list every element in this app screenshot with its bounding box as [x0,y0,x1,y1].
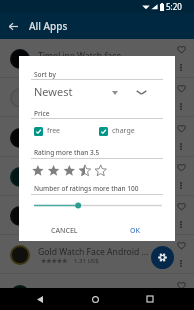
button[interactable]: More options [172,58,190,76]
staticText: All Apps [29,19,68,33]
button[interactable]: Expand sort options [130,81,152,103]
staticText: free [47,126,61,136]
button[interactable]: Favourite [172,119,190,137]
button[interactable]: Home [84,288,106,310]
staticText: Modern Watch Face [38,207,118,219]
button[interactable]: Favourite [172,276,190,294]
button[interactable]: TimeLine Watch face [0,39,194,78]
button[interactable]: Recents [139,288,161,310]
button[interactable]: Simple Watch Face [0,118,194,157]
button[interactable]: Number of ratings [34,198,162,212]
button[interactable]: Elegant Watch Face [0,275,194,310]
button[interactable]: Classic Watch Face [0,157,194,196]
button[interactable]: Settings [151,246,174,269]
staticText: Elegant Watch Face [38,286,117,298]
staticText: Rating more than 3.5 [34,148,100,157]
staticText: Newest [34,84,73,99]
staticText: OK [130,226,140,236]
button[interactable]: More options [172,97,190,115]
staticText: Analog Watch Face [38,89,115,101]
button[interactable]: Favourite [172,158,190,176]
staticText: Gold Watch Face Android Wear [38,246,151,258]
button[interactable]: Favourite [172,197,190,215]
button[interactable]: More options [172,254,190,272]
button[interactable]: Gold Watch Face Android Wear [0,235,194,274]
button[interactable]: More options [172,137,190,155]
staticText: charge [112,126,135,136]
button[interactable]: Favourite [172,40,190,58]
button[interactable]: Rating [30,164,109,177]
button[interactable]: charge [99,126,135,136]
button[interactable]: More options [172,176,190,194]
staticText: Number of ratings more than 100 [34,184,139,193]
staticText: Simple Watch Face [38,129,114,141]
staticText: TimeLine Watch face [38,50,122,62]
button[interactable]: OK [124,222,146,240]
button[interactable]: Modern Watch Face [0,196,194,235]
staticText: Classic Watch Face [38,168,113,180]
button[interactable]: Favourite [172,236,190,254]
button[interactable]: Back [29,288,51,310]
staticText: Sort by [34,70,56,79]
button[interactable]: Back [0,13,26,39]
staticText: 1.31 US$ [74,297,99,305]
staticText: 1.31 US$ [74,179,99,187]
staticText: Price [34,109,50,118]
button[interactable]: free [34,126,61,136]
staticText: 5:20 [166,1,182,12]
button[interactable]: Favourite [172,79,190,97]
staticText: CANCEL [51,226,78,236]
button[interactable]: More options [172,215,190,233]
button[interactable]: Analog Watch Face [0,78,194,117]
button[interactable]: CANCEL [45,222,84,240]
staticText: 1.31 US$ [74,257,99,265]
